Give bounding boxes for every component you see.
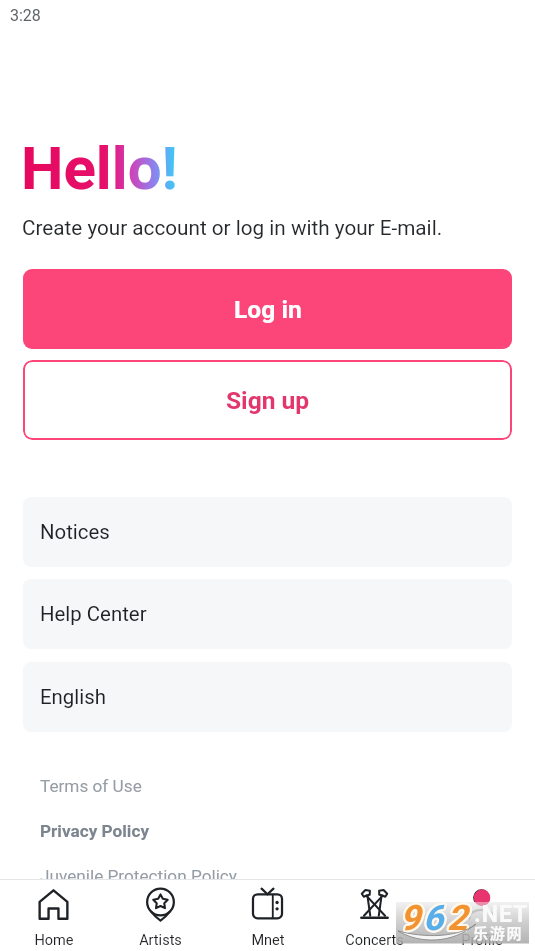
other: Mnet	[251, 888, 284, 921]
staticText: 6	[422, 897, 443, 938]
button[interactable]: Juvenile Protection Policy	[40, 866, 237, 886]
staticText: 2	[448, 900, 469, 941]
staticText: 9	[399, 899, 420, 940]
button[interactable]: Terms of Use	[40, 776, 142, 796]
staticText: 9	[399, 897, 420, 938]
other: Artists	[144, 888, 177, 921]
staticText: 2	[447, 896, 468, 937]
staticText: 2	[447, 897, 468, 938]
staticText: Notices	[40, 520, 110, 544]
staticText: 9	[400, 899, 421, 940]
staticText: 6	[423, 900, 444, 941]
staticText: Profile	[461, 932, 503, 949]
staticText: 6	[424, 896, 445, 937]
button[interactable]: Home	[0, 880, 107, 951]
staticText: Log in	[234, 295, 302, 324]
staticText: 9	[399, 896, 420, 937]
staticText: 6	[424, 898, 445, 939]
staticText: 9	[401, 897, 422, 938]
button[interactable]: English	[23, 662, 512, 732]
staticText: 6	[423, 896, 444, 937]
button[interactable]: Sign up	[23, 360, 512, 440]
staticText: 6	[424, 897, 445, 938]
button[interactable]: Artists	[107, 880, 214, 951]
staticText: .NET	[474, 901, 529, 928]
staticText: 乐游网	[473, 922, 524, 944]
staticText: Mnet	[251, 932, 285, 949]
staticText: 6	[423, 898, 444, 939]
staticText: 2	[446, 900, 467, 941]
staticText: 2	[449, 899, 470, 940]
staticText: 9	[400, 896, 421, 937]
staticText: 9	[402, 897, 423, 938]
staticText: English	[40, 685, 106, 709]
staticText: 3:28	[10, 6, 41, 25]
staticText: Hello!	[21, 133, 178, 203]
staticText: 6	[424, 899, 445, 940]
button[interactable]: Profile	[428, 880, 535, 951]
staticText: 2	[447, 900, 468, 941]
staticText: 6	[425, 898, 446, 939]
staticText: 9	[398, 897, 419, 938]
button[interactable]: Help Center	[23, 579, 512, 649]
staticText: 6	[422, 896, 443, 937]
staticText: 9	[402, 899, 423, 940]
staticText: 6	[422, 899, 443, 940]
staticText: 6	[421, 898, 442, 939]
staticText: 6	[423, 897, 444, 938]
staticText: 6	[421, 897, 442, 938]
staticText: Help Center	[40, 602, 147, 626]
staticText: 6	[425, 897, 446, 938]
staticText: 2	[448, 899, 469, 940]
staticText: 9	[398, 899, 419, 940]
staticText: 2	[445, 898, 466, 939]
other: Concerts	[358, 888, 391, 921]
staticText: 6	[423, 899, 444, 940]
staticText: 9	[399, 898, 420, 939]
staticText: 9	[401, 899, 422, 940]
staticText: Artists	[139, 932, 182, 949]
button[interactable]: Mnet	[214, 880, 321, 951]
button[interactable]: Privacy Policy	[40, 821, 150, 841]
staticText: 2	[449, 898, 470, 939]
staticText: 9	[401, 896, 422, 937]
staticText: 9	[401, 900, 422, 941]
staticText: 2	[448, 896, 469, 937]
staticText: 9	[400, 898, 421, 939]
staticText: 9	[400, 900, 421, 941]
staticText: Concerts	[345, 932, 404, 949]
staticText: 2	[446, 899, 467, 940]
button[interactable]: Log in	[23, 269, 512, 349]
staticText: 6	[422, 900, 443, 941]
button[interactable]: Notices	[23, 497, 512, 567]
staticText: 9	[401, 898, 422, 939]
staticText: 6	[425, 899, 446, 940]
other: Profile	[465, 888, 498, 921]
staticText: 2	[446, 897, 467, 938]
staticText: Sign up	[226, 386, 310, 415]
staticText: 2	[448, 898, 469, 939]
staticText: Create your account or log in with your …	[22, 216, 443, 240]
staticText: 2	[447, 899, 468, 940]
staticText: 2	[448, 897, 469, 938]
staticText: 2	[446, 896, 467, 937]
staticText: 6	[421, 899, 442, 940]
staticText: 9	[398, 898, 419, 939]
staticText: 9	[399, 900, 420, 941]
staticText: 2	[449, 897, 470, 938]
staticText: 2	[445, 897, 466, 938]
button[interactable]: Concerts	[321, 880, 428, 951]
staticText: 9	[400, 897, 421, 938]
staticText: Home	[34, 932, 74, 949]
staticText: 9	[402, 898, 423, 939]
staticText: 2	[445, 899, 466, 940]
staticText: 6	[422, 898, 443, 939]
staticText: 6	[424, 900, 445, 941]
staticText: 2	[447, 898, 468, 939]
other: Home	[37, 888, 70, 921]
staticText: 2	[446, 898, 467, 939]
